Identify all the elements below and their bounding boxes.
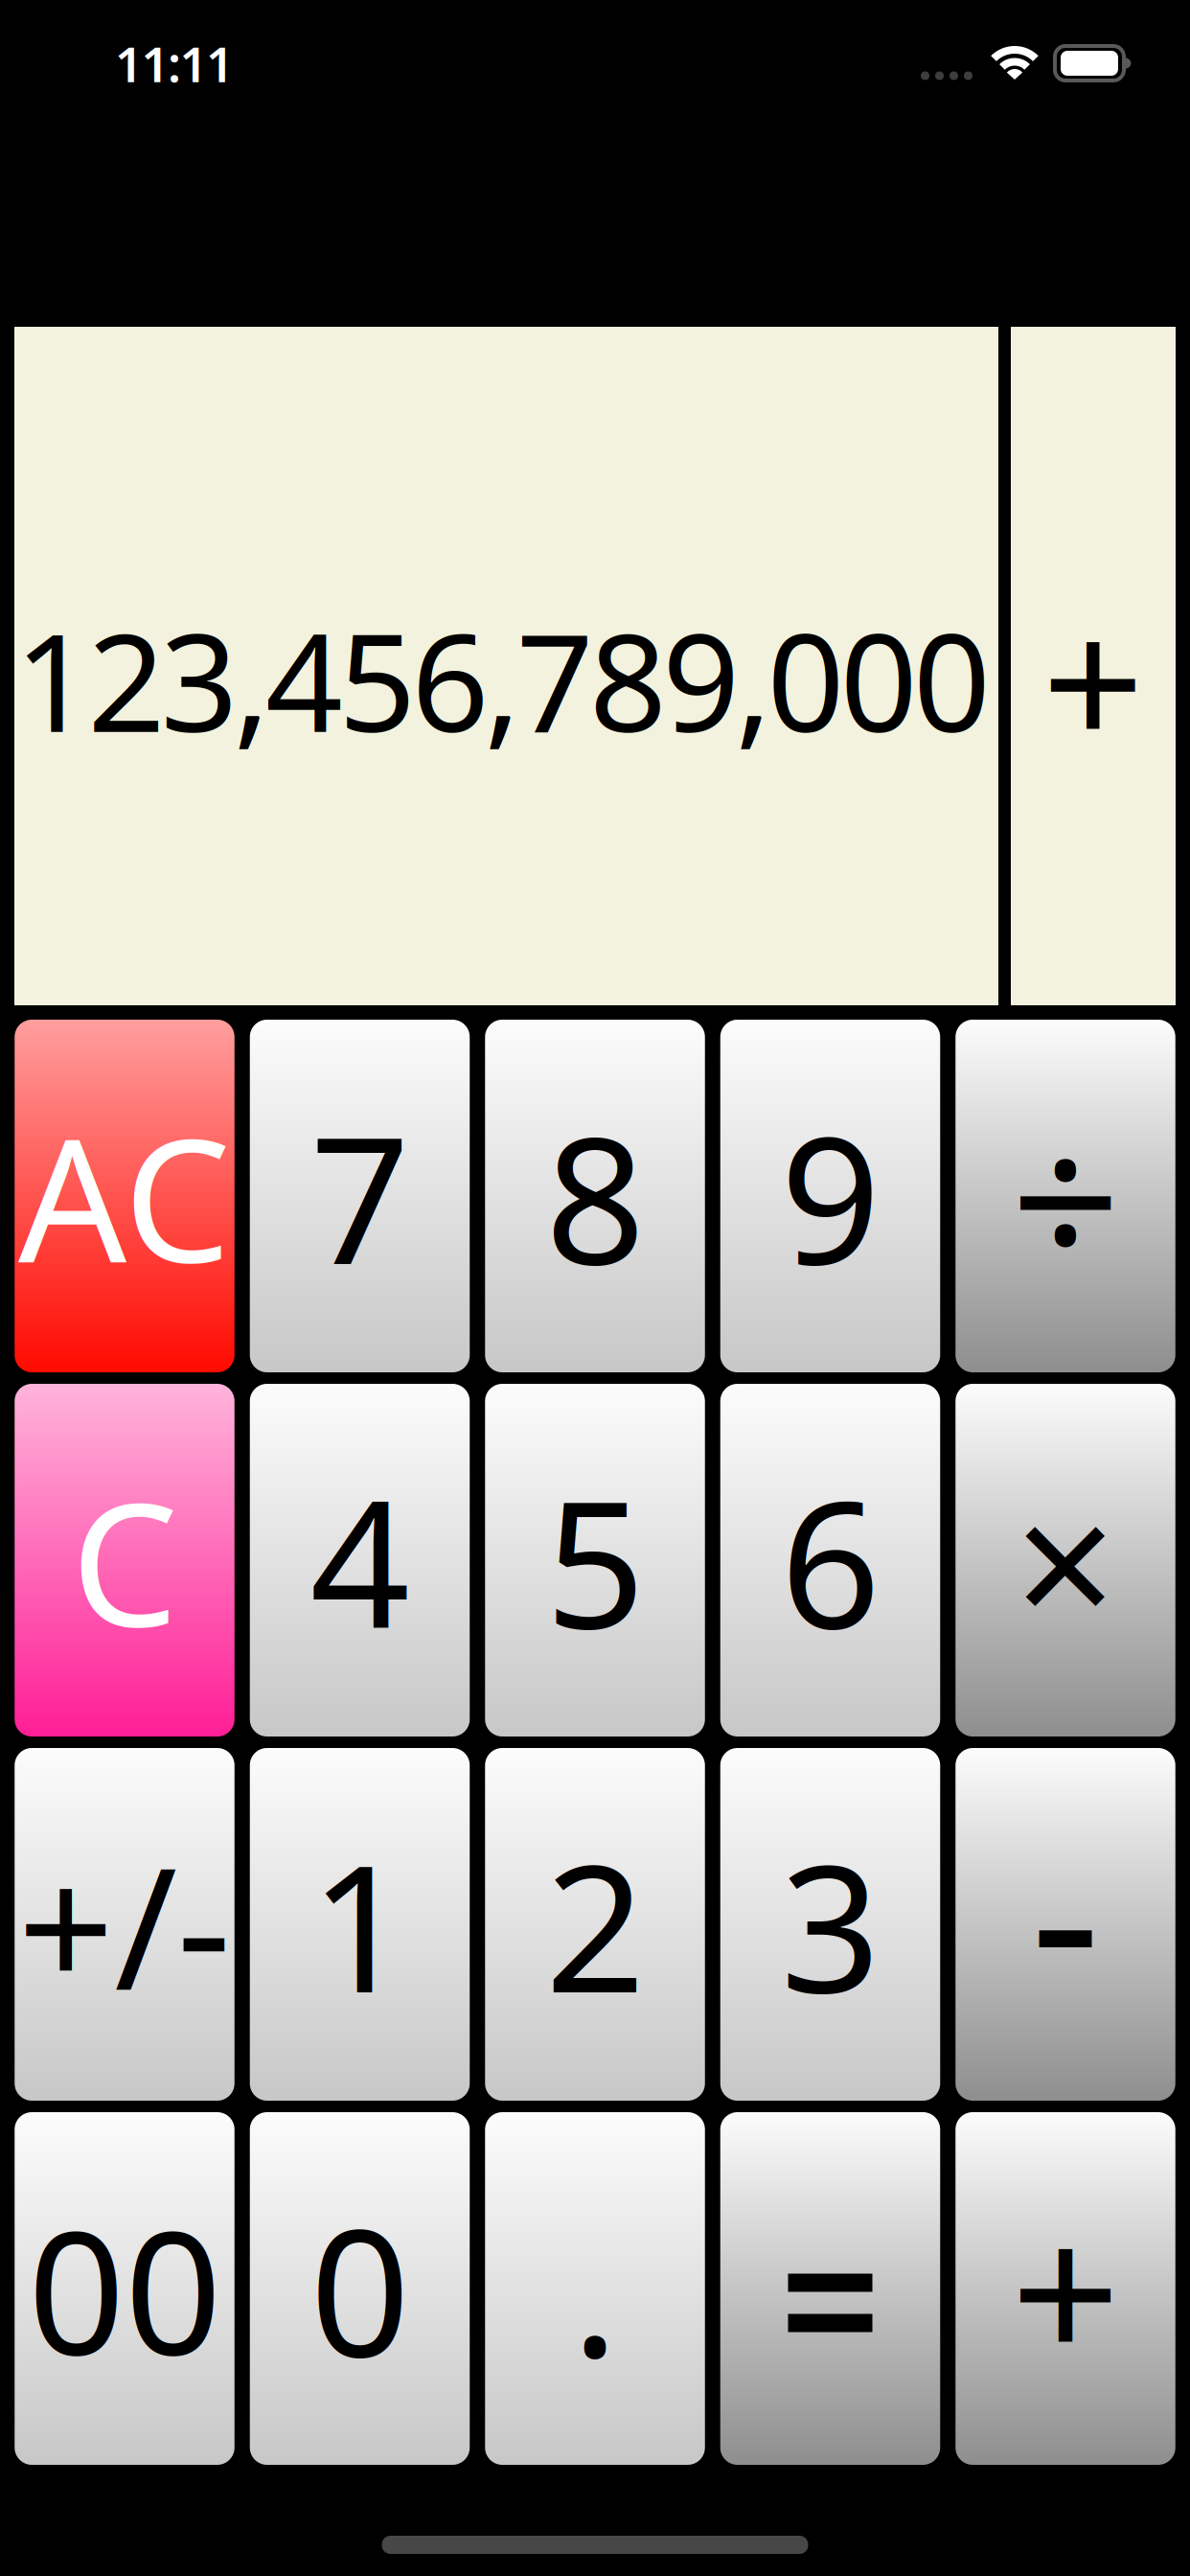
button[interactable]: 1 xyxy=(250,1748,470,2101)
staticText: 123,456,789,000 xyxy=(15,590,991,769)
staticText: 0 xyxy=(310,2172,410,2405)
staticText: 7 xyxy=(310,1080,410,1312)
staticText: + xyxy=(1042,561,1144,798)
button[interactable]: 3 xyxy=(720,1748,940,2101)
button[interactable]: × xyxy=(955,1384,1175,1736)
button[interactable]: - xyxy=(955,1748,1175,2101)
button[interactable]: C xyxy=(15,1384,234,1736)
button[interactable]: 8 xyxy=(485,1020,705,1372)
button[interactable]: equals xyxy=(720,2112,940,2465)
staticText: 8 xyxy=(545,1080,645,1312)
button[interactable]: 5 xyxy=(485,1384,705,1736)
button[interactable]: 9 xyxy=(720,1020,940,1372)
button[interactable]: . xyxy=(485,2112,705,2465)
button[interactable]: ÷ xyxy=(955,1020,1175,1372)
staticText: 5 xyxy=(545,1444,645,1676)
staticText: - xyxy=(1030,1769,1100,2057)
staticText: × xyxy=(1014,1441,1117,1679)
staticText: 3 xyxy=(780,1808,880,2041)
staticText: 11:11 xyxy=(115,31,234,96)
button[interactable]: 6 xyxy=(720,1384,940,1736)
button[interactable]: 00 xyxy=(15,2112,234,2465)
staticText: +/- xyxy=(18,1812,231,2036)
staticText: 00 xyxy=(28,2176,221,2401)
button[interactable]: 4 xyxy=(250,1384,470,1736)
button[interactable]: 0 xyxy=(250,2112,470,2465)
staticText: 4 xyxy=(310,1444,410,1676)
staticText: AC xyxy=(18,1083,231,1309)
staticText: 1 xyxy=(310,1808,410,2041)
staticText: + xyxy=(1011,2161,1120,2416)
staticText: 9 xyxy=(780,1080,880,1312)
button[interactable]: +/- xyxy=(15,1748,234,2101)
staticText: C xyxy=(71,1447,178,1673)
button[interactable]: AC xyxy=(15,1020,234,1372)
staticText: 6 xyxy=(780,1444,880,1676)
staticText: 2 xyxy=(545,1808,645,2041)
button[interactable]: + xyxy=(955,2112,1175,2465)
staticText: . xyxy=(572,2172,618,2405)
button[interactable]: 7 xyxy=(250,1020,470,1372)
button[interactable]: 2 xyxy=(485,1748,705,2101)
staticText: ÷ xyxy=(1011,1069,1120,1323)
